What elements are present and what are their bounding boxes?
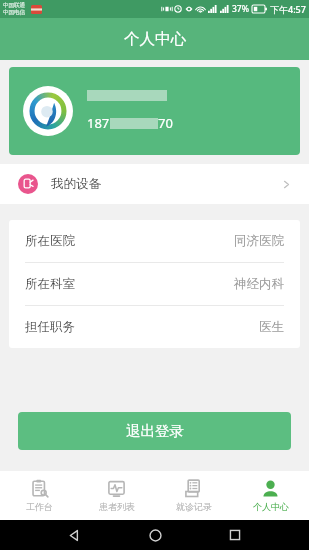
staticText: 我的设备 [51, 176, 101, 192]
button[interactable]: 所在科室 [9, 263, 300, 306]
button[interactable]: 担任职务 [9, 306, 300, 348]
staticText: 同济医院 [234, 233, 284, 249]
staticText: 患者列表 [99, 501, 135, 512]
staticText: 中国联通 [3, 2, 25, 9]
button[interactable]: 所在医院 [9, 220, 300, 263]
staticText: 退出登录 [126, 422, 184, 440]
staticText: 工作台 [26, 501, 53, 512]
staticText: 担任职务 [25, 319, 75, 335]
staticText: 中国电信 [3, 9, 25, 16]
staticText: 37% [232, 3, 249, 15]
button[interactable]: 就诊记录 [155, 471, 232, 520]
button[interactable]: 工作台 [0, 471, 78, 520]
staticText: 就诊记录 [176, 501, 212, 512]
button[interactable]: 我的设备 [0, 164, 309, 204]
staticText: 个人中心 [124, 29, 186, 49]
staticText: 神经内科 [234, 276, 284, 292]
staticText: 下午4:57 [270, 3, 306, 15]
other: Home [149, 529, 162, 542]
staticText: 所在医院 [25, 233, 75, 249]
staticText: 187 [87, 114, 110, 132]
staticText: 个人中心 [253, 501, 289, 512]
button[interactable]: 187 [9, 67, 300, 155]
button[interactable]: 退出登录 [18, 412, 291, 450]
staticText: 70 [158, 114, 173, 132]
staticText: 所在科室 [25, 276, 75, 292]
staticText: 医生 [259, 319, 284, 335]
button[interactable]: 患者列表 [78, 471, 155, 520]
other: Open my device [282, 180, 291, 189]
button[interactable]: 个人中心 [232, 471, 309, 520]
other: Back [68, 529, 81, 542]
other: Recent apps [229, 529, 241, 541]
